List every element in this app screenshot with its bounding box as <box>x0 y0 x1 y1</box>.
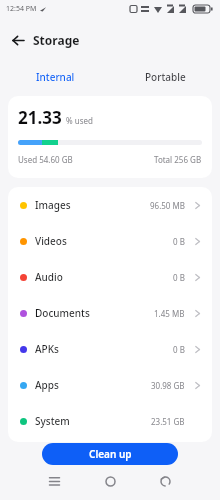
staticText: Audio <box>35 270 63 284</box>
staticText: Images <box>35 198 71 212</box>
staticText: Videos <box>35 234 67 248</box>
button[interactable] <box>105 476 116 487</box>
staticText: 96.50 MB <box>150 200 185 211</box>
button[interactable] <box>49 476 60 487</box>
button[interactable]: Images <box>8 187 212 223</box>
staticText: System <box>35 414 70 428</box>
button[interactable]: Internal <box>0 62 110 92</box>
staticText: % used <box>66 115 93 126</box>
staticText: Documents <box>35 306 90 320</box>
button[interactable]: Audio <box>8 259 212 295</box>
staticText: Total 256 GB <box>154 154 202 165</box>
staticText: APKs <box>35 342 59 356</box>
staticText: Portable <box>145 70 186 84</box>
staticText: Internal <box>36 70 75 84</box>
staticText: 0 B <box>173 272 185 283</box>
staticText: 30.98 GB <box>151 380 185 391</box>
button[interactable] <box>13 35 24 46</box>
staticText: 21.33 <box>18 106 62 129</box>
staticText: 23.51 GB <box>151 416 185 427</box>
staticText: Storage <box>33 32 80 48</box>
button[interactable]: System <box>8 403 212 439</box>
button[interactable]: Apps <box>8 367 212 403</box>
button[interactable] <box>160 476 171 487</box>
staticText: Clean up <box>89 447 132 461</box>
button[interactable]: Documents <box>8 295 212 331</box>
staticText: Apps <box>35 378 59 392</box>
button[interactable]: APKs <box>8 331 212 367</box>
staticText: 1.45 MB <box>154 308 185 319</box>
staticText: 0 B <box>173 236 185 247</box>
staticText: Used 54.60 GB <box>18 154 73 165</box>
staticText: 0 B <box>173 344 185 355</box>
staticText: 12:54 PM <box>6 4 37 14</box>
button[interactable]: Videos <box>8 223 212 259</box>
button[interactable]: Clean up <box>42 443 178 465</box>
button[interactable]: Portable <box>110 62 220 92</box>
